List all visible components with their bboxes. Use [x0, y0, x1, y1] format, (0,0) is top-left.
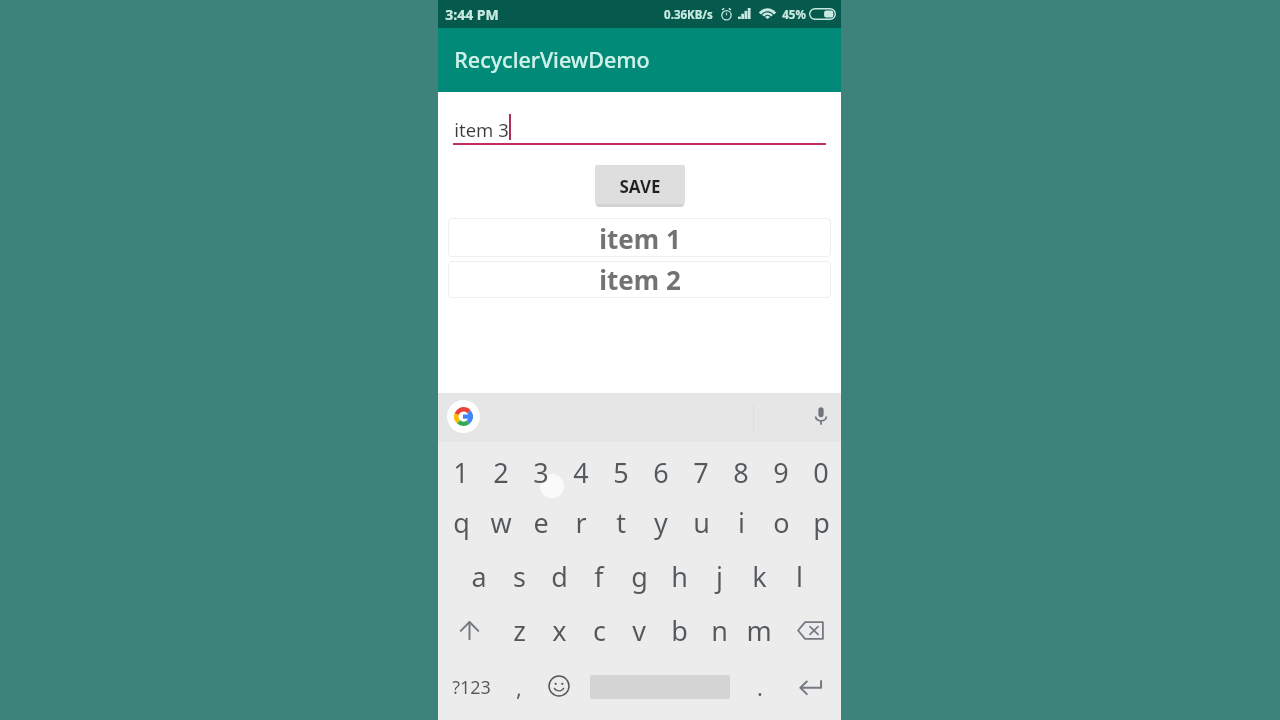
button[interactable]: 7 [681, 447, 721, 497]
button[interactable] [453, 105, 826, 145]
staticText: item 3 [454, 117, 509, 142]
staticText: 1 [453, 454, 469, 491]
button[interactable]: z [499, 605, 539, 655]
button[interactable]: Emoji [539, 661, 579, 711]
button[interactable]: v [619, 605, 659, 655]
staticText: 7 [693, 454, 709, 491]
staticText: 8 [733, 454, 749, 491]
staticText: t [616, 504, 626, 541]
staticText: u [693, 504, 710, 541]
button[interactable]: 8 [721, 447, 761, 497]
staticText: . [757, 672, 763, 702]
staticText: 9 [773, 454, 789, 491]
staticText: e [533, 504, 549, 541]
staticText: 2 [493, 454, 509, 491]
staticText: i [738, 504, 745, 541]
staticText: g [631, 558, 648, 595]
button[interactable]: ?123 [444, 662, 499, 712]
button[interactable]: 3 [521, 447, 561, 497]
button[interactable]: b [659, 605, 699, 655]
staticText: f [594, 558, 604, 595]
button[interactable]: Shift [447, 605, 491, 655]
button[interactable]: h [659, 551, 699, 601]
staticText: RecyclerViewDemo [454, 45, 650, 74]
staticText: 4 [573, 454, 589, 491]
button[interactable]: s [499, 551, 539, 601]
button[interactable]: SAVE [595, 170, 685, 203]
staticText: v [632, 612, 646, 649]
staticText: b [671, 612, 688, 649]
staticText: h [671, 558, 688, 595]
button[interactable]: Google search [447, 400, 480, 433]
button[interactable]: item 1 [448, 218, 831, 257]
staticText: r [575, 504, 587, 541]
staticText: w [490, 504, 512, 541]
button[interactable]: 1 [441, 447, 481, 497]
staticText: n [711, 612, 728, 649]
button[interactable]: t [601, 497, 641, 547]
staticText: x [552, 612, 567, 649]
button[interactable]: Backspace [788, 605, 832, 655]
staticText: d [551, 558, 568, 595]
button[interactable]: p [801, 497, 841, 547]
button[interactable]: , [499, 662, 539, 712]
staticText: 5 [613, 454, 629, 491]
staticText: o [773, 504, 790, 541]
staticText: 45% [782, 7, 806, 23]
staticText: j [716, 558, 723, 595]
staticText: q [453, 504, 470, 541]
button[interactable]: m [739, 605, 779, 655]
staticText: c [593, 612, 606, 649]
staticText: 6 [653, 454, 669, 491]
button[interactable]: q [441, 497, 481, 547]
button[interactable]: r [561, 497, 601, 547]
staticText: SAVE [619, 175, 661, 198]
staticText: p [813, 504, 830, 541]
staticText: k [752, 558, 767, 595]
button[interactable]: 5 [601, 447, 641, 497]
button[interactable]: 9 [761, 447, 801, 497]
staticText: y [654, 504, 668, 541]
button[interactable]: d [539, 551, 579, 601]
staticText: l [796, 558, 803, 595]
button[interactable]: Voice input [807, 402, 835, 430]
button[interactable]: e [521, 497, 561, 547]
button[interactable]: j [699, 551, 739, 601]
button[interactable]: l [779, 551, 819, 601]
button[interactable]: u [681, 497, 721, 547]
staticText: item 2 [599, 262, 681, 297]
button[interactable]: n [699, 605, 739, 655]
staticText: s [513, 558, 526, 595]
staticText: item 1 [599, 221, 681, 256]
button[interactable]: o [761, 497, 801, 547]
staticText: , [516, 672, 522, 702]
staticText: 3:44 PM [445, 5, 499, 24]
button[interactable]: 2 [481, 447, 521, 497]
button[interactable]: . [740, 662, 780, 712]
button[interactable] [595, 165, 685, 204]
button[interactable]: w [481, 497, 521, 547]
button[interactable]: f [579, 551, 619, 601]
button[interactable]: c [579, 605, 619, 655]
staticText: 0.36KB/s [664, 7, 713, 23]
button[interactable]: 6 [641, 447, 681, 497]
button[interactable]: Space [570, 662, 750, 712]
button[interactable]: item 2 [448, 261, 831, 298]
button[interactable]: 4 [561, 447, 601, 497]
staticText: m [746, 612, 772, 649]
button[interactable]: 0 [801, 447, 841, 497]
button[interactable]: i [721, 497, 761, 547]
staticText: ?123 [452, 675, 491, 700]
staticText: z [513, 612, 526, 649]
staticText: 0 [813, 454, 829, 491]
button[interactable]: Enter [790, 662, 830, 712]
button[interactable]: a [459, 551, 499, 601]
button[interactable]: g [619, 551, 659, 601]
staticText: 3 [533, 454, 549, 491]
staticText: a [471, 558, 487, 595]
button[interactable]: k [739, 551, 779, 601]
button[interactable]: x [539, 605, 579, 655]
button[interactable]: y [641, 497, 681, 547]
